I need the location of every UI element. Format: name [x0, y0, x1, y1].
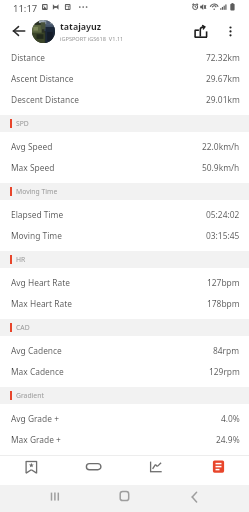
staticText: Avg Speed — [11, 141, 53, 152]
staticText: 11:17 — [13, 2, 38, 15]
button[interactable]: Max Cadence — [0, 361, 249, 382]
staticText: Moving Time — [16, 187, 58, 196]
button[interactable]: Home — [83, 485, 166, 512]
staticText: 4.0% — [221, 413, 240, 424]
staticText: Avg Cadence — [11, 345, 62, 356]
staticText: 29.01km — [206, 94, 240, 105]
staticText: SPD — [16, 119, 29, 128]
button[interactable]: Avg Grade + — [0, 408, 249, 429]
staticText: 05:24:02 — [206, 209, 240, 220]
staticText: Moving Time — [11, 230, 62, 241]
button[interactable]: Back — [5, 18, 31, 43]
button[interactable]: Avg Speed — [0, 136, 249, 157]
button[interactable]: Ascent Distance — [0, 68, 249, 89]
staticText: Avg Heart Rate — [11, 277, 70, 288]
button[interactable]: Recent apps — [0, 485, 83, 512]
button[interactable]: More options — [220, 21, 240, 43]
staticText: HR — [16, 255, 26, 264]
staticText: Avg Grade + — [11, 413, 59, 424]
button[interactable]: Max Speed — [0, 157, 249, 178]
button[interactable]: Back — [166, 485, 249, 512]
staticText: Elapsed Time — [11, 209, 64, 220]
button[interactable]: Max Grade + — [0, 429, 249, 450]
staticText: 29.67km — [206, 73, 240, 84]
staticText: 50.9km/h — [202, 162, 240, 173]
staticText: Max Grade + — [11, 434, 61, 445]
staticText: Distance — [11, 52, 45, 63]
staticText: iGPSPORT iGS618 V1.11 — [60, 35, 124, 43]
staticText: 24.9% — [216, 434, 240, 445]
staticText: 127bpm — [207, 277, 240, 288]
staticText: Descent Distance — [11, 94, 80, 105]
staticText: 178bpm — [207, 298, 240, 309]
staticText: 129rpm — [209, 366, 240, 377]
staticText: tatajayuz — [60, 21, 102, 33]
staticText: Max Heart Rate — [11, 298, 72, 309]
button[interactable]: Bookmarks — [0, 455, 63, 485]
staticText: 22.0km/h — [202, 141, 240, 152]
staticText: Gradient — [16, 391, 44, 400]
staticText: 03:15:45 — [206, 230, 240, 241]
button[interactable]: Distance — [0, 47, 249, 68]
button[interactable]: Descent Distance — [0, 89, 249, 110]
button[interactable]: Moving Time — [0, 225, 249, 246]
staticText: Ascent Distance — [11, 73, 74, 84]
button[interactable]: Elapsed Time — [0, 204, 249, 225]
button[interactable]: Avg Heart Rate — [0, 272, 249, 293]
button[interactable]: Summary — [187, 455, 249, 485]
staticText: Max Cadence — [11, 366, 64, 377]
staticText: CAD — [16, 323, 30, 332]
button[interactable]: Avg Cadence — [0, 340, 249, 361]
staticText: Max Speed — [11, 162, 55, 173]
button[interactable]: Activities — [63, 455, 125, 485]
staticText: 84rpm — [213, 345, 240, 356]
button[interactable]: Share — [188, 21, 214, 43]
button[interactable]: Stats — [125, 455, 187, 485]
button[interactable]: Max Heart Rate — [0, 293, 249, 314]
staticText: 72.32km — [206, 52, 240, 63]
